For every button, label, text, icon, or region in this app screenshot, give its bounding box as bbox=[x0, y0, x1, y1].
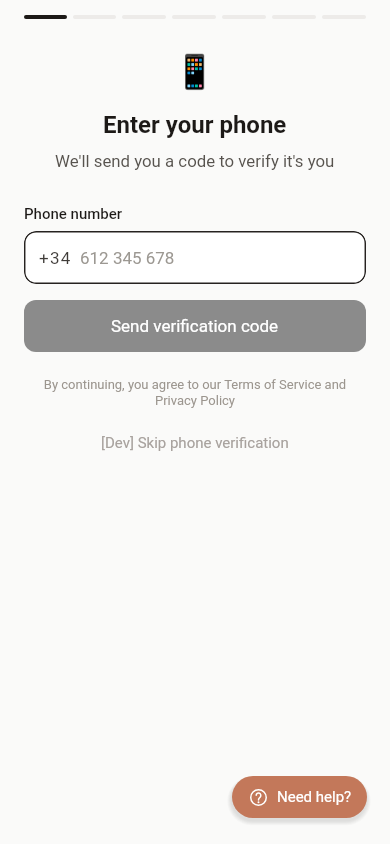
staticText: We'll send you a code to verify it's you bbox=[55, 151, 335, 171]
button[interactable]: Send verification code bbox=[24, 300, 366, 352]
button[interactable]: Help bbox=[232, 776, 367, 818]
other: Help bbox=[250, 789, 267, 806]
staticText: By continuing, you agree to our Terms of… bbox=[42, 377, 348, 408]
staticText: [Dev] Skip phone verification bbox=[101, 434, 289, 452]
staticText: 612 345 678 bbox=[80, 248, 175, 268]
button[interactable]: [Dev] Skip phone verification bbox=[93, 430, 297, 456]
staticText: Enter your phone bbox=[103, 111, 287, 139]
staticText: Send verification code bbox=[111, 316, 279, 336]
staticText: Phone number bbox=[24, 205, 123, 223]
staticText: 📱 bbox=[174, 52, 216, 91]
staticText: +34 bbox=[39, 248, 72, 268]
staticText: Need help? bbox=[277, 788, 352, 806]
button[interactable]: +34 bbox=[24, 231, 366, 284]
